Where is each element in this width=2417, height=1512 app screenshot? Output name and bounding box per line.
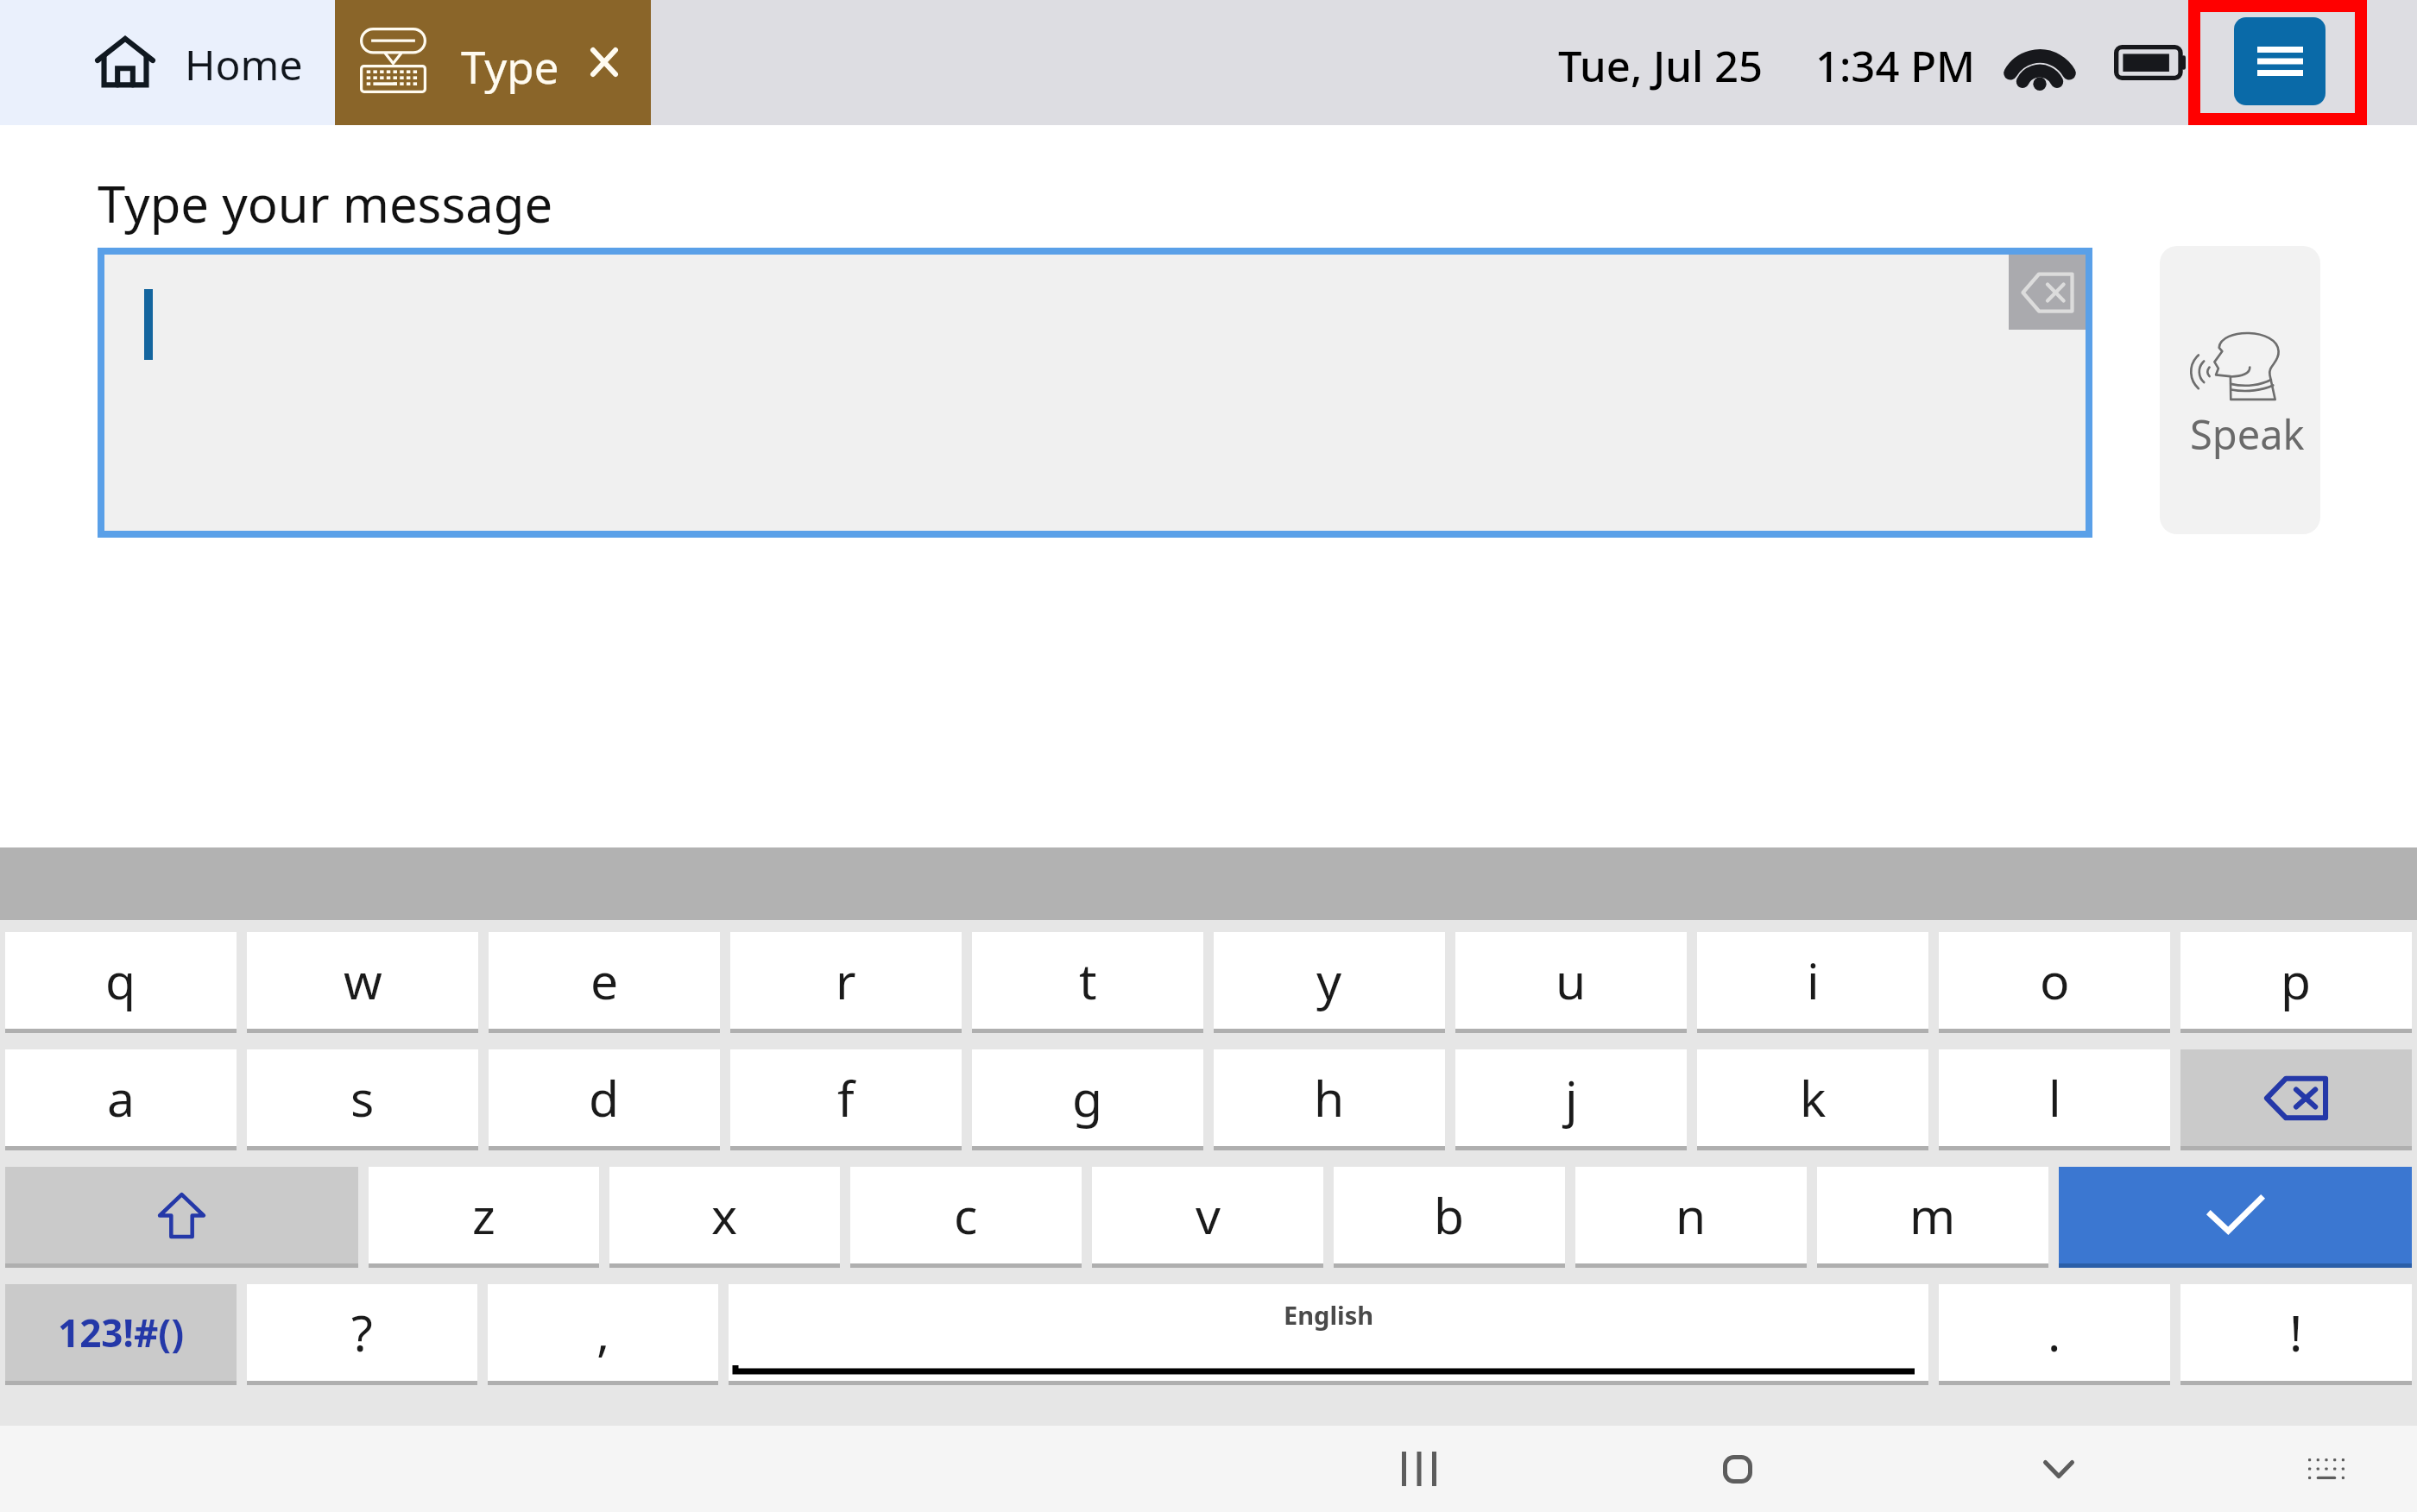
staticText: l bbox=[2048, 1064, 2061, 1131]
button[interactable]: p bbox=[2180, 932, 2412, 1029]
button[interactable]: u bbox=[1455, 932, 1687, 1029]
button[interactable]: Clear text bbox=[2009, 255, 2086, 330]
button[interactable]: k bbox=[1697, 1049, 1928, 1146]
button[interactable]: Close tab bbox=[573, 31, 635, 93]
staticText: , bbox=[596, 1299, 610, 1366]
staticText: p bbox=[2281, 947, 2312, 1014]
staticText: z bbox=[472, 1181, 495, 1249]
button[interactable]: m bbox=[1817, 1167, 2048, 1263]
button[interactable]: Type bbox=[335, 0, 651, 125]
staticText: g bbox=[1072, 1064, 1103, 1131]
button[interactable]: Speak bbox=[2160, 246, 2320, 534]
button[interactable]: d bbox=[489, 1049, 720, 1146]
button[interactable]: , bbox=[488, 1284, 718, 1381]
button[interactable]: Menu bbox=[2234, 17, 2325, 105]
staticText: c bbox=[954, 1181, 978, 1249]
button[interactable]: Backspace bbox=[2180, 1049, 2412, 1146]
staticText: b bbox=[1434, 1181, 1465, 1249]
staticText: Type bbox=[461, 36, 559, 96]
button[interactable]: Hide keyboard bbox=[2017, 1427, 2100, 1510]
button[interactable]: c bbox=[850, 1167, 1082, 1263]
button[interactable]: Clear text bbox=[104, 255, 2086, 531]
staticText: u bbox=[1556, 947, 1587, 1014]
staticText: v bbox=[1196, 1181, 1221, 1249]
button[interactable]: s bbox=[247, 1049, 478, 1146]
button[interactable]: e bbox=[489, 932, 720, 1029]
staticText: k bbox=[1800, 1064, 1827, 1131]
staticText: Home bbox=[185, 36, 303, 92]
button[interactable]: f bbox=[730, 1049, 962, 1146]
button[interactable]: t bbox=[972, 932, 1203, 1029]
staticText: English bbox=[1284, 1298, 1374, 1332]
staticText: j bbox=[1565, 1064, 1578, 1131]
button[interactable]: Enter bbox=[2059, 1167, 2412, 1263]
staticText: w bbox=[344, 947, 382, 1014]
staticText: d bbox=[589, 1064, 620, 1131]
button[interactable]: x bbox=[609, 1167, 840, 1263]
staticText: Type your message bbox=[98, 169, 553, 237]
button[interactable]: v bbox=[1092, 1167, 1323, 1263]
button[interactable]: r bbox=[730, 932, 962, 1029]
button[interactable]: Home bbox=[0, 0, 335, 125]
button[interactable]: w bbox=[247, 932, 478, 1029]
staticText: ! bbox=[2289, 1299, 2303, 1366]
staticText: ? bbox=[351, 1299, 373, 1366]
button[interactable]: q bbox=[5, 932, 237, 1029]
button[interactable]: h bbox=[1214, 1049, 1445, 1146]
staticText: t bbox=[1079, 947, 1097, 1014]
staticText: x bbox=[711, 1181, 738, 1249]
button[interactable]: b bbox=[1334, 1167, 1565, 1263]
button[interactable]: j bbox=[1455, 1049, 1687, 1146]
staticText: n bbox=[1675, 1181, 1707, 1249]
button[interactable]: ? bbox=[247, 1284, 477, 1381]
button[interactable]: l bbox=[1939, 1049, 2170, 1146]
staticText: i bbox=[1807, 947, 1820, 1014]
staticText: 123!#() bbox=[58, 1307, 185, 1358]
staticText: e bbox=[590, 947, 619, 1014]
button[interactable]: g bbox=[972, 1049, 1203, 1146]
staticText: . bbox=[2048, 1299, 2061, 1366]
button[interactable]: Shift bbox=[5, 1167, 358, 1263]
button[interactable]: n bbox=[1575, 1167, 1807, 1263]
button[interactable]: Space bbox=[729, 1284, 1928, 1381]
button[interactable]: o bbox=[1939, 932, 2170, 1029]
staticText: q bbox=[105, 947, 136, 1014]
button[interactable]: 123!#() bbox=[5, 1284, 237, 1381]
staticText: Tue, Jul 25 bbox=[1558, 37, 1764, 95]
staticText: r bbox=[836, 947, 856, 1014]
button[interactable]: a bbox=[5, 1049, 237, 1146]
staticText: Speak bbox=[2190, 406, 2305, 462]
staticText: y bbox=[1316, 947, 1342, 1014]
staticText: s bbox=[350, 1064, 375, 1131]
button[interactable]: i bbox=[1697, 932, 1928, 1029]
button[interactable]: Change keyboard bbox=[2285, 1427, 2368, 1510]
staticText: a bbox=[107, 1064, 135, 1131]
staticText: 1:34 PM bbox=[1815, 37, 1976, 95]
staticText: f bbox=[837, 1064, 855, 1131]
button[interactable]: . bbox=[1939, 1284, 2170, 1381]
staticText: o bbox=[2040, 947, 2070, 1014]
button[interactable]: ! bbox=[2180, 1284, 2412, 1381]
button[interactable]: Recent apps bbox=[1378, 1427, 1461, 1510]
staticText: h bbox=[1314, 1064, 1345, 1131]
staticText: m bbox=[1909, 1181, 1956, 1249]
button[interactable]: z bbox=[369, 1167, 599, 1263]
button[interactable]: y bbox=[1214, 932, 1445, 1029]
button[interactable]: Home bbox=[1696, 1427, 1779, 1510]
